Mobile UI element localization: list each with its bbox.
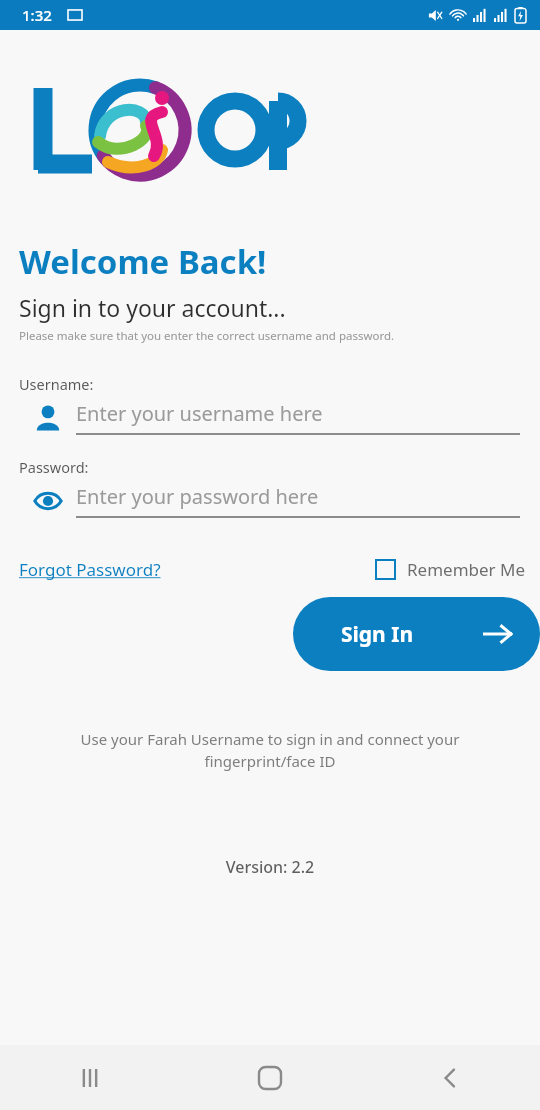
button[interactable]: Remember Me [375, 558, 526, 581]
staticText: Remember Me [407, 558, 526, 581]
button[interactable]: Show password [19, 486, 76, 516]
staticText: Username: [19, 374, 94, 394]
staticText: Password: [19, 457, 89, 477]
staticText: Welcome Back! [19, 239, 267, 284]
button[interactable]: Enter your username here [19, 400, 520, 435]
staticText: Forgot Password? [19, 558, 161, 581]
staticText: 1:32 [22, 5, 52, 25]
staticText: Enter your password here [76, 483, 319, 510]
button[interactable]: Recent apps [0, 1045, 180, 1110]
staticText: Sign in to your account... [19, 292, 286, 323]
staticText: Use your Farah Username to sign in and c… [62, 729, 478, 772]
button[interactable]: Forgot Password? [19, 558, 161, 581]
staticText: Sign In [341, 620, 414, 649]
staticText: Please make sure that you enter the corr… [19, 328, 395, 344]
button[interactable]: Show password [19, 483, 520, 518]
button[interactable]: Sign In [293, 597, 540, 671]
staticText: Version: 2.2 [0, 856, 540, 878]
button[interactable]: Home [180, 1045, 360, 1110]
button[interactable]: Back [360, 1045, 540, 1110]
staticText: Enter your username here [76, 400, 323, 427]
